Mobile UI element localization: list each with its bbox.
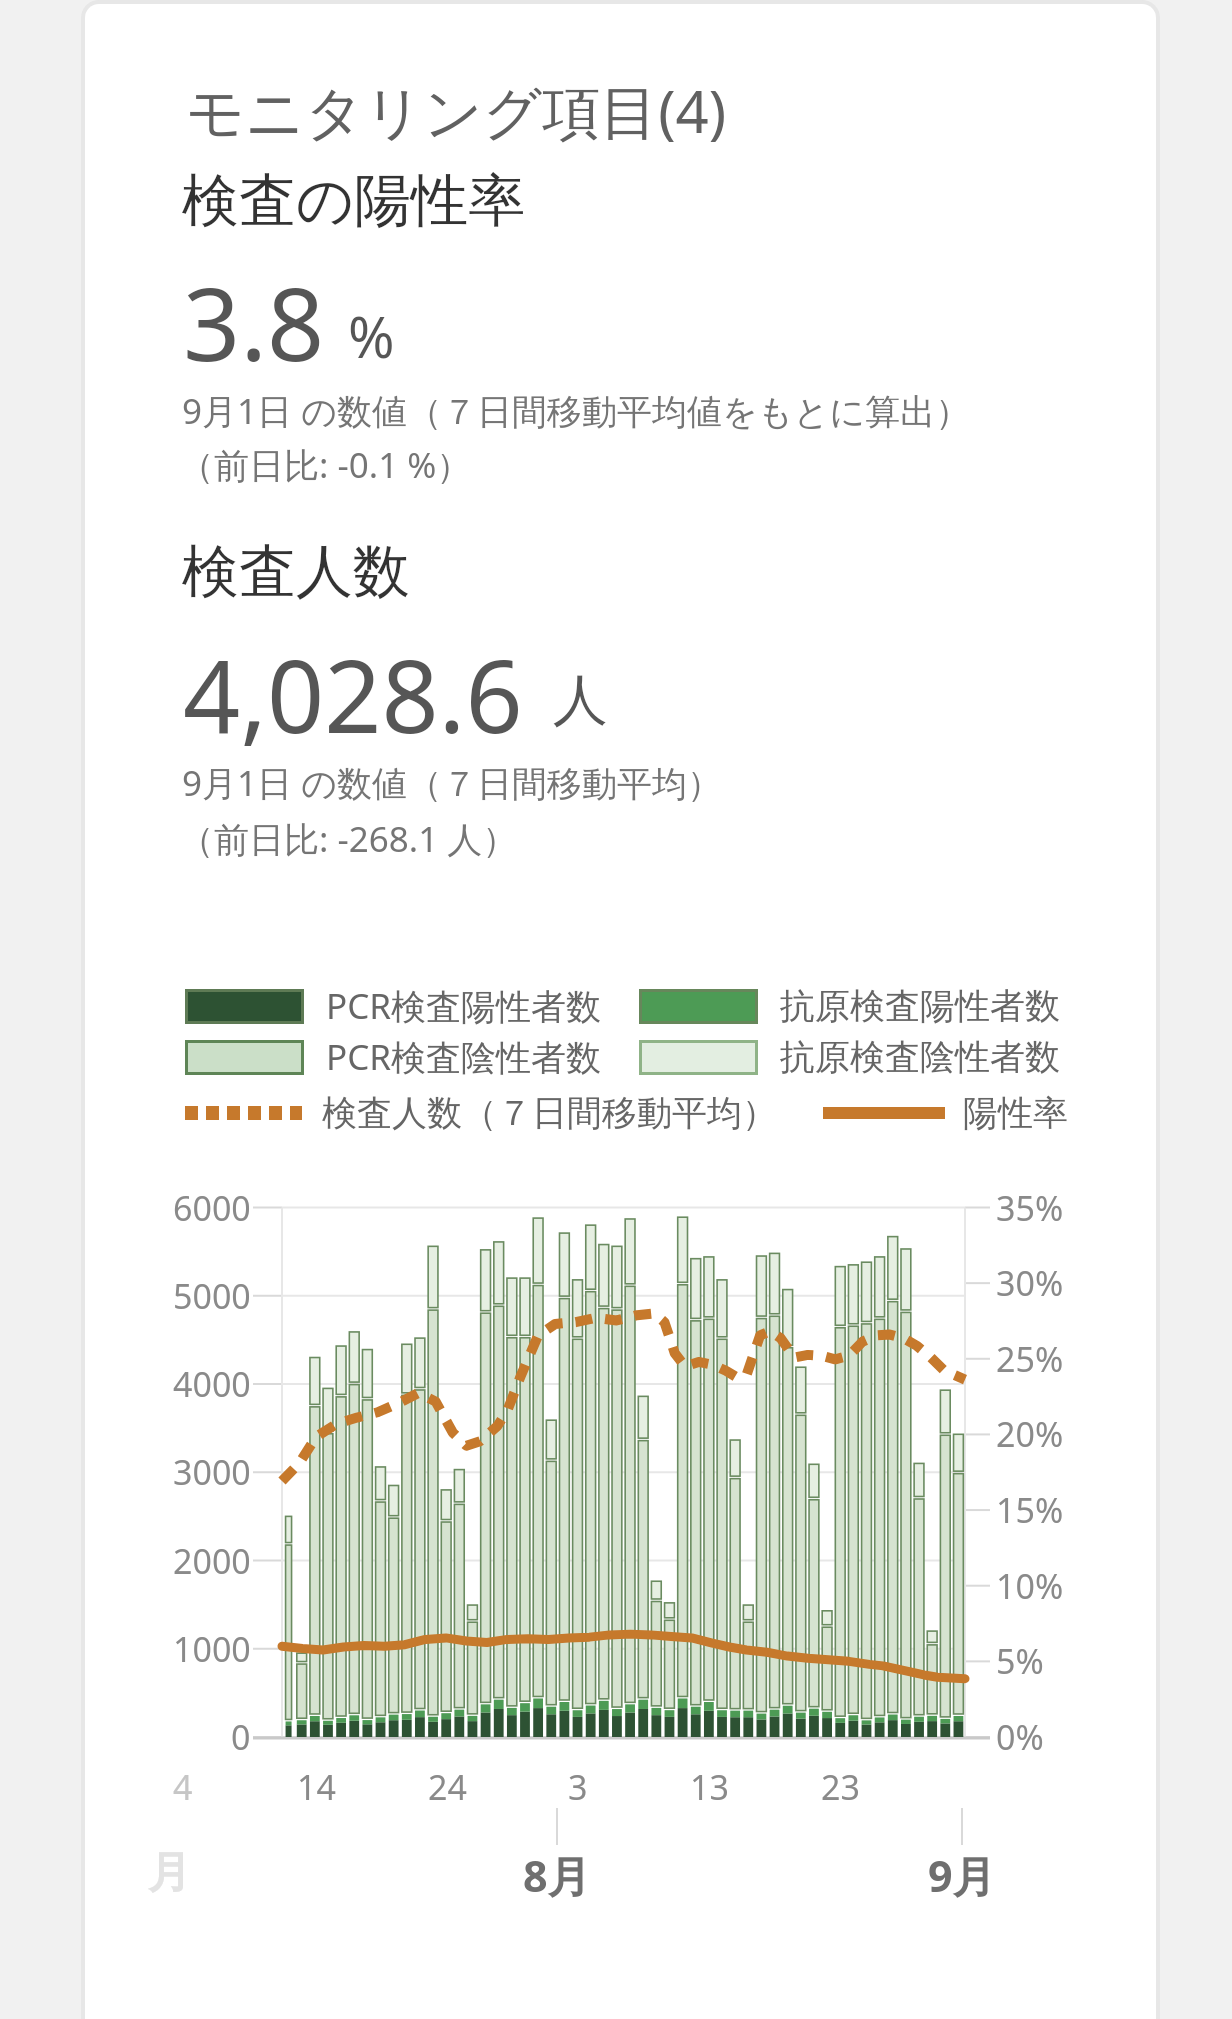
staticText: 人 [553, 666, 608, 735]
staticText: 9月1日 の数値（７日間移動平均値をもとに算出） [182, 387, 971, 435]
staticText: 5000 [173, 1273, 251, 1319]
staticText: 14 [297, 1764, 336, 1810]
button[interactable]: 検査人数（７日間移動平均） [322, 1088, 822, 1138]
staticText: 1000 [173, 1626, 251, 1672]
staticText: 抗原検査陽性者数 [780, 984, 1060, 1028]
staticText: 月 [148, 1846, 191, 1898]
button[interactable]: 抗原検査陰性者数 [780, 1032, 1180, 1082]
staticText: 陽性率 [963, 1091, 1068, 1135]
staticText: 15% [996, 1487, 1064, 1533]
button[interactable]: 検査の陽性率 [182, 161, 1082, 241]
staticText: 検査人数（７日間移動平均） [322, 1091, 777, 1135]
staticText: 9月1日 の数値（７日間移動平均） [182, 759, 722, 807]
button[interactable]: PCR検査陽性者数 [326, 981, 726, 1031]
staticText: （前日比: -0.1 %） [179, 441, 472, 489]
staticText: 4000 [173, 1361, 251, 1407]
staticText: 9月 [928, 1846, 996, 1898]
staticText: 5% [996, 1638, 1044, 1684]
button[interactable] [639, 1040, 758, 1075]
button[interactable]: PCR検査陰性者数 [326, 1032, 726, 1082]
staticText: 25% [996, 1336, 1064, 1382]
staticText: 抗原検査陰性者数 [780, 1035, 1060, 1079]
staticText: 3.8 [183, 254, 325, 390]
staticText: 23 [821, 1764, 860, 1810]
staticText: 4 [173, 1764, 193, 1810]
button[interactable]: 検査人数 [182, 532, 1082, 612]
button[interactable] [185, 1040, 304, 1075]
staticText: 検査の陽性率 [182, 165, 526, 237]
staticText: （前日比: -268.1 人） [179, 815, 518, 863]
staticText: 2000 [173, 1538, 251, 1584]
staticText: 0 [231, 1714, 251, 1760]
staticText: 24 [428, 1764, 467, 1810]
staticText: 0% [996, 1714, 1044, 1760]
staticText: 35% [996, 1185, 1064, 1231]
staticText: % [348, 298, 395, 374]
button[interactable]: 抗原検査陽性者数 [780, 981, 1180, 1031]
staticText: 6000 [173, 1185, 251, 1231]
staticText: 検査人数 [182, 536, 410, 608]
staticText: PCR検査陽性者数 [326, 982, 602, 1030]
button[interactable] [639, 989, 758, 1024]
button[interactable]: 陽性率 [963, 1088, 1163, 1138]
staticText: 3 [568, 1764, 588, 1810]
staticText: 20% [996, 1411, 1064, 1457]
button[interactable] [185, 989, 304, 1024]
staticText: 30% [996, 1260, 1064, 1306]
staticText: 4,028.6 [183, 626, 523, 762]
staticText: モニタリング項目(4) [186, 71, 727, 150]
staticText: PCR検査陰性者数 [326, 1033, 602, 1081]
staticText: 3000 [173, 1449, 251, 1495]
staticText: 8月 [523, 1846, 591, 1898]
staticText: 10% [996, 1563, 1064, 1609]
staticText: 13 [690, 1764, 729, 1810]
